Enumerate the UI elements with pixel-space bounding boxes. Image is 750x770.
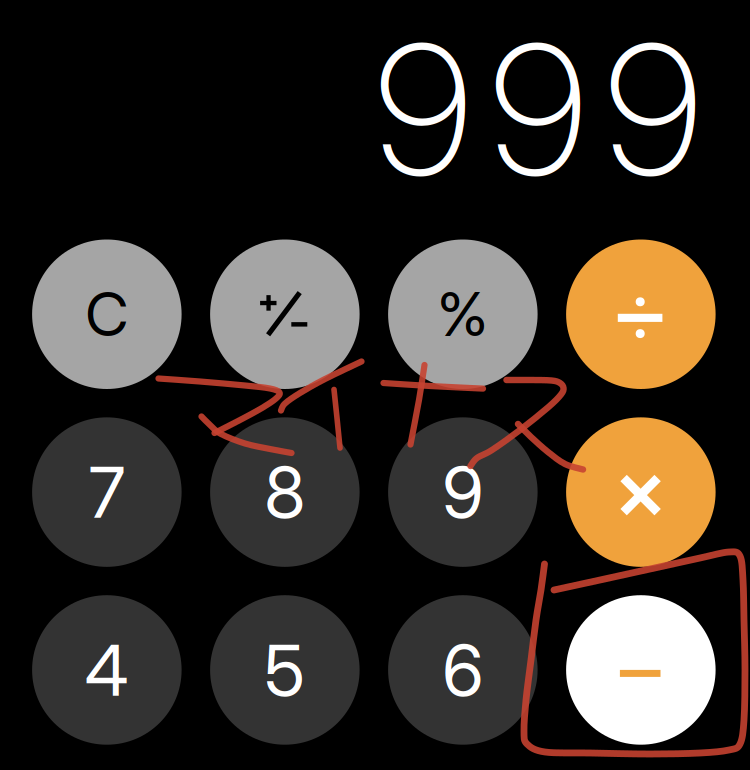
staticText: 6 xyxy=(442,627,483,713)
button[interactable]: Minus xyxy=(566,595,716,745)
button[interactable]: C xyxy=(32,239,182,389)
staticText: 5 xyxy=(264,627,305,713)
button[interactable]: Multiply xyxy=(566,417,716,567)
staticText: 999 xyxy=(374,1,701,217)
staticText: 8 xyxy=(264,449,305,535)
button[interactable]: Plus Minus xyxy=(210,239,360,389)
button[interactable]: 4 xyxy=(32,595,182,745)
button[interactable]: % xyxy=(388,239,538,389)
staticText: 9 xyxy=(442,449,483,535)
staticText: 4 xyxy=(85,627,129,713)
button[interactable]: 9 xyxy=(388,417,538,567)
staticText: C xyxy=(85,278,128,351)
staticText: % xyxy=(437,278,488,351)
button[interactable]: 5 xyxy=(210,595,360,745)
staticText: 7 xyxy=(89,449,125,535)
button[interactable]: 8 xyxy=(210,417,360,567)
button[interactable]: 7 xyxy=(32,417,182,567)
button[interactable]: 6 xyxy=(388,595,538,745)
button[interactable]: Divide xyxy=(566,239,716,389)
